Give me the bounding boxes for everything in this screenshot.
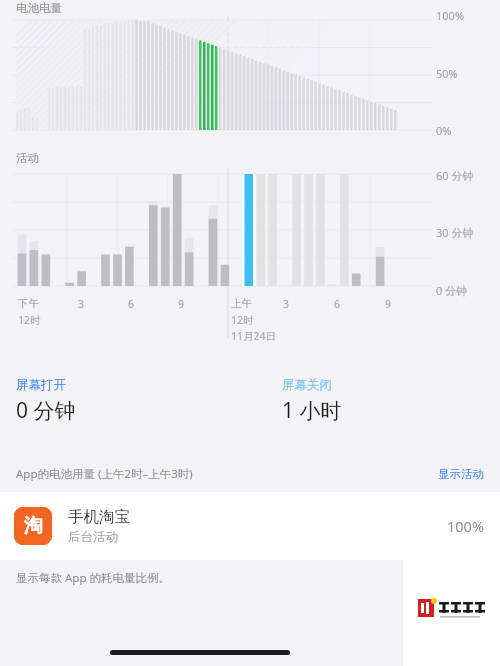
staticText: 手机淘宝 bbox=[68, 507, 130, 527]
staticText: 12时 bbox=[18, 313, 41, 327]
staticText: 12时 bbox=[231, 313, 254, 327]
staticText: 1 小时 bbox=[282, 396, 342, 425]
button[interactable]: 屏幕打开 bbox=[16, 377, 76, 425]
staticText: 下午 bbox=[18, 297, 39, 310]
staticText: 30 分钟 bbox=[436, 225, 474, 240]
staticText: 9 bbox=[385, 297, 392, 311]
staticText: 屏幕打开 bbox=[16, 377, 66, 393]
staticText: 0 分钟 bbox=[16, 396, 76, 425]
staticText: 上午 bbox=[231, 297, 252, 310]
staticText: 6 bbox=[334, 297, 341, 311]
staticText: 电池电量 bbox=[16, 1, 62, 15]
button[interactable]: 显示活动 bbox=[450, 467, 500, 481]
staticText: 100% bbox=[447, 516, 484, 536]
staticText: 活动 bbox=[16, 151, 39, 165]
staticText: 11月24日 bbox=[231, 329, 277, 343]
staticText: 6 bbox=[128, 297, 135, 311]
staticText: App的电池用量 (上午2时–上午3时) bbox=[16, 466, 193, 482]
button[interactable]: 屏幕关闭 bbox=[282, 377, 342, 425]
staticText: 9 bbox=[178, 297, 185, 311]
staticText: 3 bbox=[78, 297, 85, 311]
staticText: 屏幕关闭 bbox=[282, 377, 332, 393]
staticText: 显示每款 App 的耗电量比例。 bbox=[16, 570, 170, 586]
other: 手机淘宝图标 bbox=[14, 507, 52, 545]
staticText: 3 bbox=[283, 297, 290, 311]
staticText: 60 分钟 bbox=[436, 168, 474, 183]
staticText: 后台活动 bbox=[68, 529, 118, 545]
button[interactable]: 手机淘宝图标 bbox=[0, 492, 500, 560]
staticText: 0 分钟 bbox=[436, 283, 468, 298]
staticText: 100% bbox=[436, 8, 465, 23]
staticText: 50% bbox=[436, 66, 458, 81]
staticText: 显示活动 bbox=[438, 467, 484, 481]
staticText: 0% bbox=[436, 123, 452, 138]
staticText: 淘 bbox=[24, 514, 43, 538]
